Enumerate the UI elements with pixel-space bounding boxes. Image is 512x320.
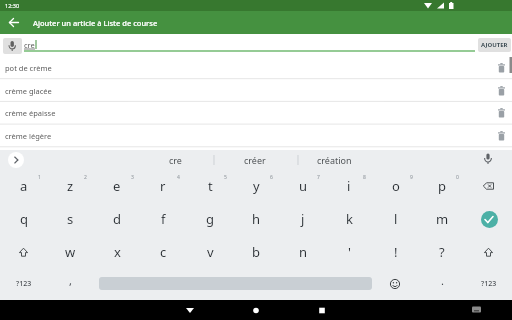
staticText: z (67, 177, 74, 195)
button[interactable]: d (94, 203, 140, 235)
button[interactable]: n (280, 236, 326, 268)
button[interactable] (468, 300, 486, 320)
staticText: s (67, 210, 74, 228)
button[interactable]: x (94, 236, 140, 268)
button[interactable] (493, 60, 509, 75)
button[interactable]: crème épaisse (0, 101, 512, 124)
button[interactable] (1, 236, 47, 268)
button[interactable]: ' (326, 236, 372, 268)
button[interactable] (383, 268, 407, 300)
button[interactable]: crème légère (0, 124, 512, 147)
button[interactable] (312, 300, 332, 320)
staticText: Ajouter un article à Liste de course (33, 18, 158, 28)
button[interactable] (8, 152, 24, 168)
staticText: cre (24, 40, 35, 50)
staticText: ? (439, 243, 445, 261)
staticText: 3 (131, 174, 134, 181)
button[interactable]: t (187, 170, 233, 202)
button[interactable] (493, 128, 509, 143)
staticText: ! (394, 243, 398, 261)
staticText: d (113, 210, 121, 228)
button[interactable]: m (419, 203, 465, 235)
staticText: i (347, 177, 351, 195)
staticText: cre (169, 154, 182, 166)
staticText: l (394, 210, 398, 228)
button[interactable]: v (187, 236, 233, 268)
button[interactable]: k (326, 203, 372, 235)
staticText: 1 (38, 174, 41, 181)
staticText: AJOUTER (481, 41, 508, 49)
staticText: a (20, 177, 28, 195)
button[interactable]: w (47, 236, 93, 268)
button[interactable] (493, 83, 509, 98)
button[interactable]: a (1, 170, 47, 202)
button[interactable] (466, 236, 512, 268)
staticText: crème légère (5, 131, 52, 141)
staticText: y (253, 177, 260, 195)
staticText: pot de crème (5, 63, 52, 73)
button[interactable]: cre (140, 150, 210, 170)
staticText: k (346, 210, 353, 228)
staticText: 2 (84, 174, 87, 181)
button[interactable]: o (373, 170, 419, 202)
staticText: f (161, 210, 166, 228)
staticText: j (301, 210, 305, 228)
button[interactable] (4, 12, 26, 34)
button[interactable]: j (280, 203, 326, 235)
button[interactable]: y (233, 170, 279, 202)
staticText: création (317, 154, 352, 166)
staticText: 7 (317, 174, 320, 181)
button[interactable]: z (47, 170, 93, 202)
staticText: u (299, 177, 308, 195)
button[interactable]: q (1, 203, 47, 235)
button[interactable]: AJOUTER (478, 38, 511, 52)
button[interactable]: s (47, 203, 93, 235)
staticText: crème épaisse (5, 108, 56, 118)
button[interactable] (246, 300, 266, 320)
button[interactable]: . (419, 264, 465, 296)
staticText: e (113, 177, 121, 195)
staticText: r (160, 177, 166, 195)
staticText: g (206, 210, 214, 228)
button[interactable]: , (47, 264, 93, 296)
button[interactable]: création (295, 150, 373, 170)
staticText: 8 (363, 174, 366, 181)
staticText: b (252, 243, 260, 261)
button[interactable] (493, 105, 509, 120)
staticText: créer (244, 154, 266, 166)
button[interactable]: créer (213, 150, 297, 170)
button[interactable]: f (140, 203, 186, 235)
button[interactable]: crème glacée (0, 79, 512, 102)
button[interactable]: r (140, 170, 186, 202)
button[interactable]: b (233, 236, 279, 268)
button[interactable]: p (419, 170, 465, 202)
staticText: c (160, 243, 167, 261)
button[interactable]: ! (373, 236, 419, 268)
staticText: q (20, 210, 28, 228)
button[interactable]: l (373, 203, 419, 235)
button[interactable]: g (187, 203, 233, 235)
staticText: 12:30 (5, 2, 20, 9)
button[interactable]: pot de crème (0, 56, 512, 79)
button[interactable]: u (280, 170, 326, 202)
button[interactable] (466, 170, 512, 202)
button[interactable]: ?123 (466, 268, 512, 300)
button[interactable]: i (326, 170, 372, 202)
button[interactable] (466, 203, 512, 235)
staticText: x (114, 243, 121, 261)
button[interactable]: e (94, 170, 140, 202)
button[interactable] (3, 38, 22, 54)
staticText: t (208, 177, 213, 195)
button[interactable]: c (140, 236, 186, 268)
staticText: 9 (410, 174, 413, 181)
staticText: h (252, 210, 261, 228)
button[interactable]: ?123 (1, 268, 47, 300)
staticText: , (69, 273, 72, 288)
button[interactable] (180, 300, 200, 320)
button[interactable]: h (233, 203, 279, 235)
staticText: 6 (270, 174, 273, 181)
button[interactable]: ? (419, 236, 465, 268)
staticText: . (441, 273, 444, 288)
staticText: w (65, 243, 76, 261)
